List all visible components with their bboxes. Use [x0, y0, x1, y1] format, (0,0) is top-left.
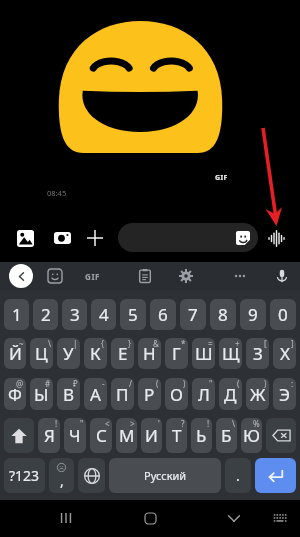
button[interactable]: .	[225, 458, 251, 493]
button[interactable]: Е	[111, 338, 134, 369]
button[interactable]: Т	[166, 418, 187, 453]
button[interactable]	[4, 418, 34, 453]
button[interactable]: З	[246, 338, 269, 369]
button[interactable]: К	[84, 338, 107, 369]
button[interactable]: 9	[240, 299, 266, 330]
button[interactable]: Change language	[78, 458, 105, 493]
button[interactable]: 2	[33, 299, 58, 330]
staticText: )	[264, 378, 267, 389]
staticText: (	[156, 378, 159, 389]
button[interactable]: Я	[38, 418, 60, 453]
staticText: Х	[280, 342, 290, 365]
button[interactable]: 3	[62, 299, 87, 330]
staticText: 1	[12, 303, 22, 326]
button[interactable]: Ц	[30, 338, 53, 369]
button[interactable]: М	[116, 418, 137, 453]
staticText: {	[101, 338, 105, 349]
staticText: .	[236, 466, 240, 485]
button[interactable]: Home	[136, 504, 164, 532]
button[interactable]: Recent apps	[52, 504, 80, 532]
staticText: О	[170, 383, 183, 406]
button[interactable]: Keyboard layout	[266, 504, 294, 532]
button[interactable]: А	[84, 378, 107, 410]
button[interactable]: ?123	[4, 458, 45, 493]
staticText: Ь	[196, 424, 207, 447]
button[interactable]: Voice message	[264, 226, 288, 250]
button[interactable]: 8	[210, 299, 236, 330]
button[interactable]: Ь	[191, 418, 212, 453]
button[interactable]: Р	[138, 378, 161, 410]
button[interactable]: Н	[138, 338, 161, 369]
staticText: @	[16, 378, 24, 389]
staticText: И	[145, 424, 158, 447]
staticText: /	[129, 378, 132, 389]
button[interactable]: Ы	[30, 378, 53, 410]
button[interactable]: Д	[219, 378, 242, 410]
staticText: Н	[143, 342, 156, 365]
button[interactable]: В	[57, 378, 80, 410]
button[interactable]: Clipboard	[133, 264, 157, 288]
button[interactable]: Щ	[219, 338, 242, 369]
staticText: Т	[172, 424, 182, 447]
button[interactable]: Stickers	[43, 264, 67, 288]
staticText: ?	[181, 418, 185, 429]
button[interactable]: Voice input	[270, 264, 294, 288]
button[interactable]: 7	[180, 299, 206, 330]
button[interactable]: Add attachment	[83, 226, 107, 250]
button[interactable]: У	[57, 338, 80, 369]
button[interactable]: Л	[192, 378, 215, 410]
staticText: "	[80, 418, 84, 429]
button[interactable]: Х	[273, 338, 296, 369]
button[interactable]: Ф	[4, 378, 26, 410]
button[interactable]: С	[90, 418, 112, 453]
button[interactable]: О	[165, 378, 188, 410]
button[interactable]: Settings	[174, 264, 198, 288]
staticText: 8	[218, 303, 228, 326]
staticText: |	[73, 338, 78, 349]
button[interactable]: 4	[91, 299, 116, 330]
staticText: 0	[278, 303, 288, 326]
button[interactable]: GIF	[82, 264, 104, 288]
button[interactable]: Back	[9, 264, 33, 288]
button[interactable]: ,	[49, 458, 74, 493]
button[interactable]: Й	[4, 338, 26, 369]
button[interactable]: More options	[228, 264, 252, 288]
staticText: У	[63, 342, 74, 365]
staticText: \	[48, 338, 51, 349]
button[interactable]: 0	[270, 299, 296, 330]
button[interactable]: Э	[273, 378, 296, 410]
staticText: Ц	[35, 342, 48, 365]
button[interactable]: Hide keyboard	[220, 504, 248, 532]
staticText: "	[209, 378, 213, 389]
staticText: Д	[224, 383, 237, 406]
staticText: 2	[41, 303, 51, 326]
staticText: &	[153, 338, 159, 349]
button[interactable]: 1	[4, 299, 29, 330]
staticText: ₽	[73, 378, 78, 389]
button[interactable]: 5	[120, 299, 146, 330]
button[interactable]: И	[141, 418, 162, 453]
button[interactable]	[266, 418, 296, 453]
staticText: 6	[158, 303, 168, 326]
button[interactable]: Ю	[241, 418, 262, 453]
button[interactable]: 6	[150, 299, 176, 330]
staticText: 3	[70, 303, 80, 326]
button[interactable]: Б	[216, 418, 237, 453]
staticText: 08:45	[47, 188, 67, 198]
button[interactable]: П	[111, 378, 134, 410]
button[interactable]: Enter	[255, 458, 296, 493]
button[interactable]	[118, 223, 258, 252]
staticText: Ф	[8, 383, 22, 406]
staticText: К	[90, 342, 101, 365]
button[interactable]: Gallery	[13, 226, 37, 250]
button[interactable]: Ш	[192, 338, 215, 369]
staticText: %	[253, 418, 260, 429]
button[interactable]: Camera	[50, 226, 74, 250]
staticText: З	[253, 342, 263, 365]
button[interactable]: Г	[165, 338, 188, 369]
button[interactable]: Ж	[246, 378, 269, 410]
button[interactable]: Ч	[64, 418, 86, 453]
staticText: *	[181, 338, 186, 349]
button[interactable]: Русский	[109, 458, 221, 493]
staticText: -	[102, 378, 105, 389]
